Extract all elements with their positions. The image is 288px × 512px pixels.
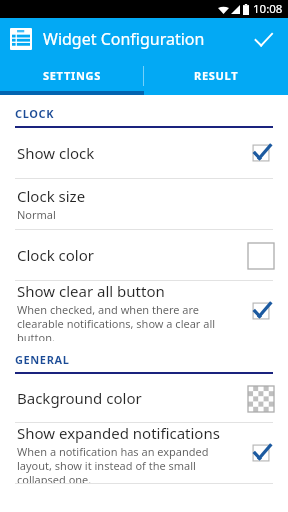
button[interactable]: Toggle — [247, 139, 275, 167]
button[interactable]: Done — [248, 24, 278, 54]
staticText: Widget Configuration — [43, 28, 205, 50]
staticText: Background color — [17, 388, 142, 408]
staticText: CLOCK — [15, 106, 55, 121]
button[interactable]: Toggle — [247, 439, 275, 467]
button[interactable]: Show clock — [0, 128, 288, 178]
staticText: Show clock — [17, 143, 95, 163]
staticText: Clock size — [17, 186, 86, 206]
button[interactable]: Show expanded notifications — [0, 423, 288, 483]
staticText: When checked, and when there are clearab… — [17, 302, 239, 341]
staticText: Clock color — [17, 245, 94, 265]
button[interactable]: Clock color — [0, 230, 288, 280]
button[interactable]: SETTINGS — [0, 60, 143, 91]
button[interactable]: Clock size — [0, 179, 288, 229]
staticText: 10:08 — [253, 1, 283, 17]
staticText: When a notification has an expanded layo… — [17, 444, 239, 483]
button[interactable]: Pick color — [246, 384, 275, 413]
staticText: RESULT — [194, 68, 239, 83]
button[interactable]: RESULT — [144, 60, 288, 91]
button[interactable]: App icon — [10, 28, 32, 50]
button[interactable]: Toggle — [247, 297, 275, 325]
button[interactable]: Background color — [0, 374, 288, 422]
staticText: Show clear all button — [17, 281, 165, 301]
staticText: Normal — [17, 207, 56, 222]
staticText: GENERAL — [15, 352, 70, 367]
button[interactable]: Show clear all button — [0, 281, 288, 341]
button[interactable]: Pick color — [246, 241, 275, 270]
staticText: SETTINGS — [43, 68, 101, 83]
staticText: Show expanded notifications — [17, 423, 220, 443]
